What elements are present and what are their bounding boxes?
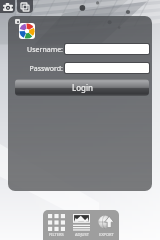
button[interactable] [65,44,149,54]
button[interactable]: Close [15,19,20,24]
button[interactable]: FILTERS [43,210,69,240]
staticText: Login [72,82,93,93]
staticText: Username: [10,45,63,55]
button[interactable]: EXPORT [94,210,119,240]
button[interactable]: Login [15,79,149,96]
button[interactable]: ADJUST [69,210,94,240]
staticText: ADJUST [75,232,89,237]
button[interactable] [65,63,149,73]
button[interactable]: Copy [17,0,33,13]
staticText: FILTERS [49,232,64,237]
staticText: EXPORT [99,232,114,237]
staticText: Password: [10,64,63,74]
button[interactable]: Camera [0,0,15,13]
